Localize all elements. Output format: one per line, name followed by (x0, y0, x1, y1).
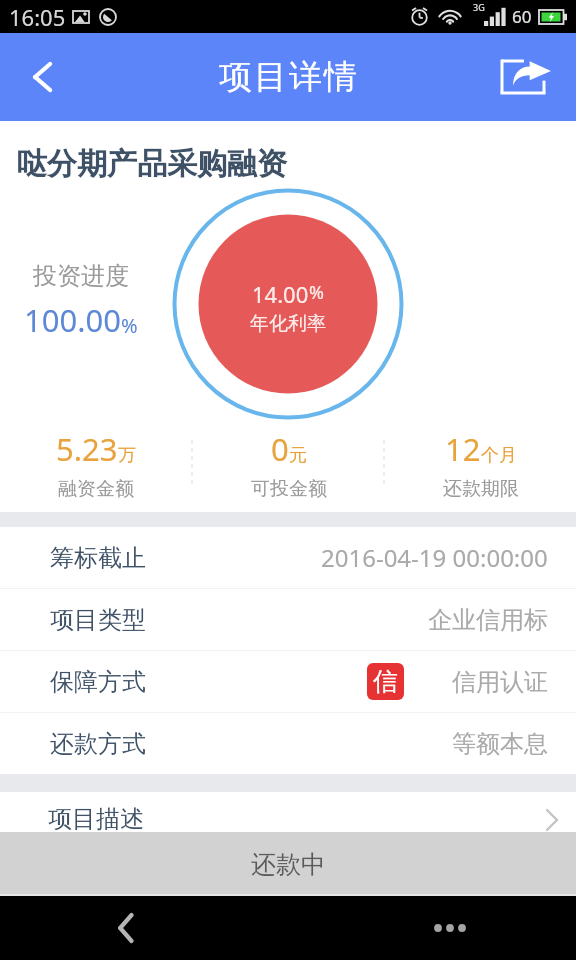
staticText: 保障方式 (50, 667, 146, 697)
staticText: 可投金额 (251, 477, 327, 501)
staticText: 融资金额 (58, 477, 134, 501)
staticText: 100.00 (24, 299, 121, 341)
button[interactable]: 项目类型 (0, 589, 576, 650)
staticText: 项目描述 (48, 804, 144, 834)
staticText: 元 (289, 444, 307, 467)
button[interactable]: 保障方式 (0, 651, 576, 712)
staticText: 还款期限 (443, 477, 519, 501)
staticText: 年化利率 (250, 312, 326, 336)
staticText: 还款方式 (50, 729, 146, 759)
staticText: 14.00 (252, 279, 309, 309)
staticText: 信 (373, 666, 398, 697)
staticText: 项目类型 (50, 605, 146, 635)
staticText: 信用认证 (452, 667, 548, 697)
staticText: 企业信用标 (428, 605, 548, 635)
staticText: 哒分期产品采购融资 (17, 145, 287, 183)
staticText: 3G (473, 1, 485, 13)
staticText: 投资进度 (33, 261, 129, 291)
staticText: 个月 (481, 444, 517, 467)
staticText: 16:05 (9, 2, 66, 32)
staticText: 12 (445, 428, 481, 470)
staticText: 等额本息 (452, 729, 548, 759)
button[interactable]: 项目描述 (0, 792, 576, 832)
button[interactable]: Share (492, 33, 576, 121)
button[interactable]: Recents (420, 898, 480, 958)
staticText: 万 (118, 444, 136, 467)
button[interactable]: Back (0, 33, 84, 121)
staticText: 还款中 (251, 849, 326, 880)
staticText: 5.23 (56, 428, 118, 470)
staticText: 项目详情 (218, 56, 358, 98)
button[interactable]: 还款中 (0, 832, 576, 896)
button[interactable]: 还款方式 (0, 713, 576, 774)
staticText: % (309, 280, 324, 305)
staticText: 筹标截止 (50, 543, 146, 573)
button[interactable]: Back (96, 898, 156, 958)
staticText: % (121, 312, 138, 339)
button[interactable]: 筹标截止 (0, 527, 576, 588)
staticText: 60 (512, 5, 532, 28)
staticText: 0 (271, 428, 289, 470)
staticText: 2016-04-19 00:00:00 (321, 541, 548, 574)
